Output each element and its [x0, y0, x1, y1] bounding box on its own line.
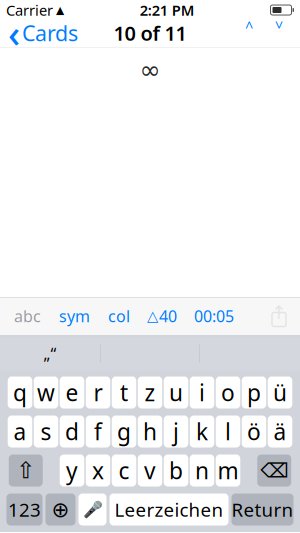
staticText: r — [93, 377, 102, 407]
button[interactable]: Next card — [264, 19, 294, 47]
staticText: t — [120, 377, 128, 407]
staticText: p — [247, 377, 261, 407]
button[interactable]: Share — [263, 304, 295, 328]
button[interactable]: o — [216, 376, 240, 408]
button[interactable]: e — [60, 376, 84, 408]
button[interactable]: u — [164, 376, 188, 408]
button[interactable]: a — [8, 415, 32, 447]
staticText: Cards — [22, 19, 78, 47]
staticText: ⌫ — [260, 459, 288, 482]
button[interactable]: ö — [242, 415, 266, 447]
button[interactable]: Dictate — [78, 493, 106, 525]
staticText: ö — [247, 416, 261, 446]
button[interactable]: c — [112, 454, 136, 486]
staticText: Leerzeichen — [114, 497, 223, 522]
staticText: abc — [14, 305, 41, 327]
button[interactable]: n — [190, 454, 214, 486]
button[interactable]: 00:05 — [185, 298, 243, 334]
staticText: x — [92, 455, 104, 485]
button[interactable]: Next keyboard — [45, 493, 75, 525]
button[interactable]: ä — [268, 415, 292, 447]
button[interactable]: k — [190, 415, 214, 447]
staticText: sym — [59, 305, 90, 327]
staticText: ▲ — [56, 4, 64, 16]
staticText: f — [94, 416, 102, 446]
staticText: i — [199, 377, 205, 407]
button[interactable]: w — [34, 376, 58, 408]
staticText: h — [143, 416, 157, 446]
button[interactable]: l — [216, 415, 240, 447]
button[interactable]: q — [8, 376, 32, 408]
staticText: 00:05 — [194, 305, 234, 327]
button[interactable]: b — [164, 454, 188, 486]
staticText: o — [221, 377, 235, 407]
staticText: ↑ — [271, 302, 287, 323]
staticText: Carrier — [6, 0, 53, 20]
staticText: j — [173, 416, 179, 446]
button[interactable]: p — [242, 376, 266, 408]
button[interactable]: Shift — [9, 454, 43, 486]
button[interactable]: Delete — [257, 454, 291, 486]
staticText: y — [66, 455, 78, 485]
staticText: ˄ — [245, 13, 253, 52]
button[interactable]: f — [86, 415, 110, 447]
button[interactable]: s — [34, 415, 58, 447]
staticText: c — [118, 455, 129, 485]
staticText: 🎤 — [82, 500, 102, 519]
staticText: m — [217, 455, 238, 485]
button[interactable]: ‹ — [0, 19, 84, 47]
staticText: l — [225, 416, 231, 446]
button[interactable]: Return — [231, 493, 293, 525]
staticText: b — [169, 455, 183, 485]
staticText: ⇧ — [16, 458, 35, 483]
button[interactable]: v — [138, 454, 162, 486]
staticText: g — [117, 416, 131, 446]
staticText: a — [13, 416, 26, 446]
button[interactable]: sym — [50, 298, 99, 334]
button[interactable]: ü — [268, 376, 292, 408]
staticText: 2:21 PM — [140, 0, 195, 20]
staticText: „“ — [43, 343, 56, 364]
button[interactable]: j — [164, 415, 188, 447]
button[interactable]: abc — [5, 298, 50, 334]
staticText: u — [169, 377, 183, 407]
button[interactable]: Leerzeichen — [109, 493, 228, 525]
staticText: ⊕ — [51, 497, 69, 522]
button[interactable]: z — [138, 376, 162, 408]
button[interactable]: r — [86, 376, 110, 408]
button[interactable]: △ — [139, 298, 185, 334]
staticText: v — [144, 455, 156, 485]
button[interactable]: i — [190, 376, 214, 408]
staticText: z — [144, 377, 155, 407]
staticText: ü — [273, 377, 287, 407]
button[interactable]: y — [60, 454, 84, 486]
button[interactable]: col — [99, 298, 139, 334]
staticText: ‹ — [8, 8, 20, 58]
staticText: ä — [273, 416, 286, 446]
staticText: n — [195, 455, 209, 485]
button[interactable]: 123 — [6, 493, 42, 525]
staticText: s — [40, 416, 51, 446]
staticText: k — [196, 416, 208, 446]
staticText: ∞ — [139, 55, 160, 84]
staticText: d — [65, 416, 79, 446]
staticText: q — [13, 377, 27, 407]
staticText: w — [37, 377, 55, 407]
staticText: △ — [147, 308, 158, 324]
staticText: col — [108, 305, 130, 327]
staticText: 10 of 11 — [113, 20, 186, 46]
button[interactable]: d — [60, 415, 84, 447]
staticText: 123 — [8, 497, 41, 522]
staticText: Return — [231, 497, 293, 522]
button[interactable]: t — [112, 376, 136, 408]
staticText: e — [65, 377, 78, 407]
button[interactable]: Previous card — [234, 19, 264, 47]
button[interactable]: h — [138, 415, 162, 447]
staticText: ˅ — [275, 13, 283, 52]
button[interactable]: m — [216, 454, 240, 486]
button[interactable]: g — [112, 415, 136, 447]
button[interactable]: x — [86, 454, 110, 486]
staticText: 40 — [159, 305, 177, 327]
